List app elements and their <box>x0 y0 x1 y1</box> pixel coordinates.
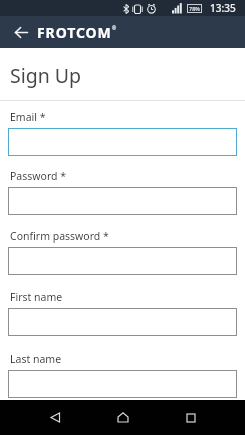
staticText: Confirm password * <box>10 229 109 243</box>
staticText: Last name <box>10 352 62 366</box>
staticText: ® <box>112 25 117 32</box>
button[interactable] <box>8 187 237 215</box>
staticText: 78% <box>189 5 200 12</box>
button[interactable] <box>8 247 237 275</box>
staticText: Password * <box>10 169 67 183</box>
button[interactable] <box>163 400 219 435</box>
staticText: FROTCOM <box>37 23 112 42</box>
button[interactable] <box>27 400 83 435</box>
staticText: 13:35 <box>210 1 236 15</box>
button[interactable] <box>8 128 237 156</box>
staticText: First name <box>10 290 63 304</box>
button[interactable] <box>8 370 237 398</box>
button[interactable] <box>95 400 151 435</box>
button[interactable] <box>8 308 237 336</box>
button[interactable] <box>9 20 33 44</box>
staticText: Email * <box>10 110 46 124</box>
staticText: Sign Up <box>10 62 82 89</box>
